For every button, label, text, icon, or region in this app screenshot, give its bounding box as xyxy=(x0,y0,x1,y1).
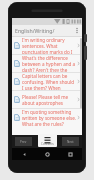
button[interactable]: What's the difference between a hyphen a… xyxy=(12,55,82,72)
staticText: I'm writing ordinary sentences. What pun… xyxy=(22,37,76,54)
button[interactable]: Contents xyxy=(38,134,57,147)
button[interactable]: Prev xyxy=(12,135,34,148)
button[interactable]: Please! Please tell me about apostrophes xyxy=(12,91,82,108)
staticText: Contents xyxy=(41,142,54,146)
staticText: Capital letters can be confusing. When s… xyxy=(22,73,76,90)
staticText: What's the difference between a hyphen a… xyxy=(22,55,76,72)
button[interactable]: More options xyxy=(73,25,80,36)
button[interactable]: Capital letters can be confusing. When s… xyxy=(12,73,82,90)
button[interactable]: Next xyxy=(59,135,82,148)
staticText: I'm quoting something written by someone… xyxy=(22,109,76,126)
staticText: Please! Please tell me about apostrophes xyxy=(22,94,76,106)
button[interactable]: I'm quoting something written by someone… xyxy=(12,109,82,126)
button[interactable]: Home xyxy=(41,148,53,160)
button[interactable]: I'm writing ordinary sentences. What pun… xyxy=(12,37,82,54)
staticText: Prev xyxy=(20,140,27,144)
button[interactable]: Recent apps xyxy=(64,148,76,160)
button[interactable]: Back xyxy=(18,148,30,160)
staticText: Next xyxy=(67,140,74,144)
staticText: English/Writing/Punctuation xyxy=(15,27,73,34)
